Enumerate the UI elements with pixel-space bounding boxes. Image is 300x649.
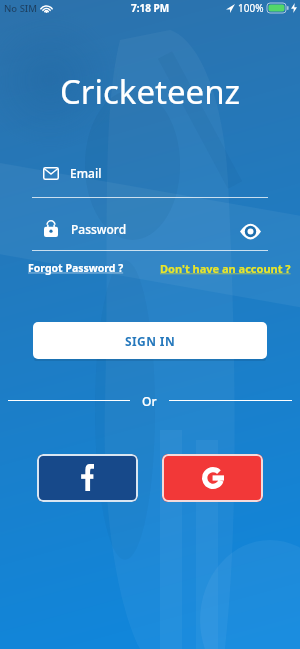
button[interactable]	[162, 454, 263, 502]
staticText: Password	[71, 221, 127, 237]
staticText: Don't have an account ?	[160, 261, 291, 276]
staticText: SIGN IN	[125, 333, 176, 349]
button[interactable]	[37, 454, 138, 502]
staticText: 100%	[238, 1, 264, 15]
staticText: 7:18 PM	[131, 1, 170, 15]
staticText: No SIM	[4, 2, 37, 15]
staticText: Cricketeenz	[0, 69, 300, 114]
button[interactable]	[240, 224, 261, 239]
staticText: Email	[70, 165, 102, 181]
staticText: Forgot Password ?	[28, 261, 124, 275]
button[interactable]: Password	[44, 220, 127, 237]
button[interactable]: SIGN IN	[33, 322, 267, 359]
button[interactable]: Forgot Password ?	[28, 261, 124, 275]
button[interactable]: Email	[43, 165, 102, 181]
staticText: Or	[142, 393, 157, 408]
button[interactable]: Don't have an account ?	[160, 261, 291, 276]
